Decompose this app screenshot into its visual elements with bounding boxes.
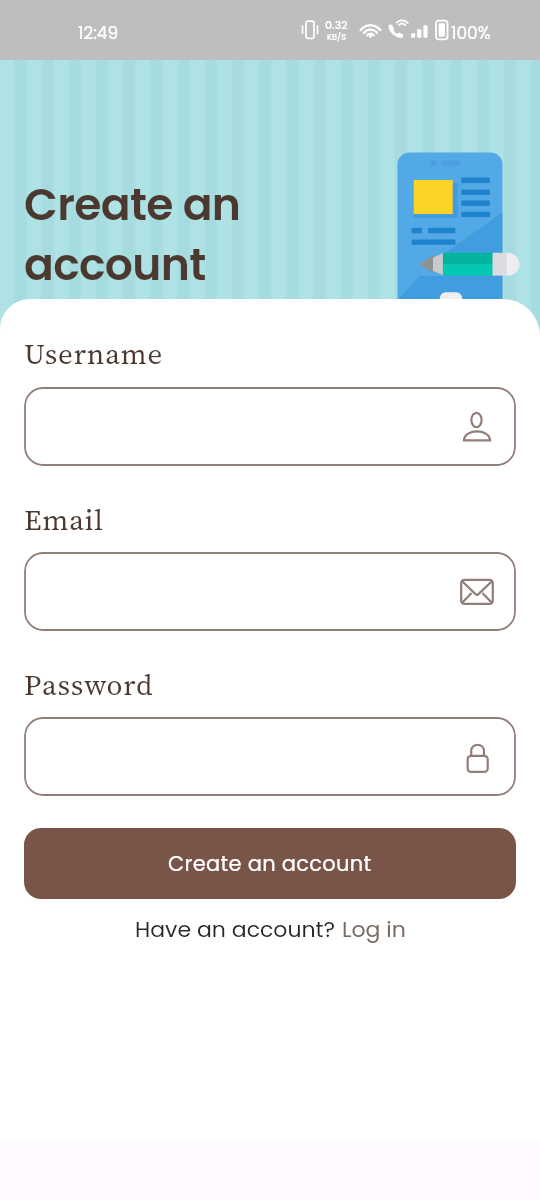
staticText: KB/S <box>327 32 347 43</box>
button[interactable]: Create an account <box>24 828 516 899</box>
staticText: Username <box>24 334 164 374</box>
button[interactable]: Username field <box>24 387 516 466</box>
staticText: Email <box>24 500 104 540</box>
button[interactable]: Email field <box>24 552 516 631</box>
staticText: Create an account <box>168 849 372 878</box>
staticText: 100% <box>451 21 491 45</box>
button[interactable]: Log in <box>342 914 406 945</box>
button[interactable]: Password field <box>24 717 516 796</box>
staticText: Create an account <box>24 174 241 295</box>
staticText: 12:49 <box>78 21 119 45</box>
staticText: 0.32 <box>325 17 348 32</box>
staticText: Password <box>24 665 154 705</box>
staticText: Have an account? <box>135 914 342 945</box>
